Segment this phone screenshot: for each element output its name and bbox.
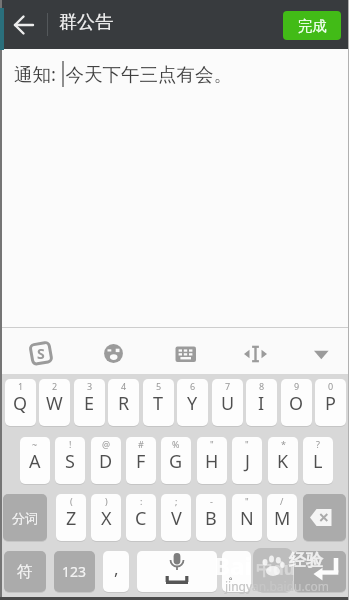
staticText: @ — [102, 438, 111, 450]
staticText: 经验 — [289, 550, 323, 571]
staticText: 8 — [259, 380, 265, 392]
button[interactable]: 7 — [212, 379, 243, 426]
staticText: ! — [69, 438, 72, 450]
button[interactable] — [258, 551, 291, 592]
button[interactable]: 完成 — [283, 11, 341, 40]
staticText: 5 — [156, 380, 162, 392]
button[interactable]: - — [196, 494, 226, 541]
staticText: 群公告 — [59, 11, 113, 34]
button[interactable]: ? — [303, 437, 333, 484]
staticText: , — [114, 557, 119, 580]
button[interactable]: " — [232, 437, 262, 484]
staticText: ; — [175, 495, 178, 507]
button[interactable]: 123 — [54, 551, 95, 592]
staticText: 4 — [121, 380, 127, 392]
staticText: U — [221, 391, 235, 416]
button[interactable] — [10, 14, 38, 36]
button[interactable]: 分词 — [3, 494, 47, 541]
button[interactable]: * — [268, 437, 298, 484]
button[interactable]: ~ — [20, 437, 50, 484]
staticText: J — [245, 449, 250, 474]
button[interactable]: " — [232, 494, 262, 541]
button[interactable] — [175, 346, 197, 363]
staticText: Y — [187, 391, 198, 416]
staticText: P — [325, 391, 336, 416]
staticText: " — [210, 438, 214, 450]
button[interactable]: ( — [56, 494, 86, 541]
button[interactable]: : — [126, 494, 156, 541]
button[interactable]: / — [267, 494, 297, 541]
button[interactable]: 。 — [222, 551, 251, 592]
staticText: V — [171, 506, 182, 531]
staticText: 符 — [17, 562, 33, 582]
staticText: S — [65, 449, 75, 474]
staticText: 123 — [62, 562, 87, 581]
staticText: * — [281, 438, 286, 450]
staticText: 1 — [18, 380, 24, 392]
staticText: H — [205, 449, 219, 474]
staticText: F — [136, 449, 146, 474]
button[interactable] — [294, 551, 346, 592]
button[interactable]: , — [103, 551, 129, 592]
staticText: " — [245, 438, 249, 450]
staticText: L — [313, 449, 323, 474]
staticText: M — [274, 506, 291, 531]
button[interactable]: # — [126, 437, 156, 484]
staticText: " — [245, 495, 249, 507]
button[interactable] — [243, 345, 268, 363]
button[interactable]: 6 — [177, 379, 208, 426]
staticText: B — [205, 506, 217, 531]
staticText: : — [140, 495, 143, 507]
button[interactable]: ; — [161, 494, 191, 541]
button[interactable]: 8 — [246, 379, 277, 426]
staticText: ~ — [32, 438, 38, 450]
staticText: E — [84, 391, 95, 416]
staticText: 完成 — [298, 17, 327, 35]
button[interactable]: 1 — [5, 379, 36, 426]
staticText: S — [37, 344, 45, 363]
staticText: ? — [316, 438, 320, 450]
staticText: T — [153, 391, 164, 416]
staticText: ) — [105, 495, 108, 507]
staticText: / — [280, 495, 284, 507]
button[interactable]: " — [197, 437, 227, 484]
button[interactable]: ! — [55, 437, 85, 484]
button[interactable] — [312, 348, 331, 361]
button[interactable]: 0 — [315, 379, 346, 426]
staticText: jingyan.baidu.com — [225, 578, 329, 594]
staticText: I — [258, 391, 265, 416]
staticText: 。 — [228, 566, 241, 582]
staticText: - — [210, 495, 213, 507]
button[interactable]: @ — [91, 437, 121, 484]
button[interactable]: 4 — [108, 379, 139, 426]
button[interactable]: 3 — [74, 379, 105, 426]
staticText: C — [135, 506, 147, 531]
staticText: 7 — [225, 380, 231, 392]
staticText: 2 — [52, 380, 58, 392]
staticText: O — [289, 391, 304, 416]
staticText: Z — [66, 506, 77, 531]
staticText: X — [101, 506, 112, 531]
staticText: 0 — [328, 380, 334, 392]
button[interactable]: ) — [91, 494, 121, 541]
staticText: N — [240, 506, 254, 531]
button[interactable] — [303, 494, 346, 541]
staticText: 6 — [190, 380, 196, 392]
staticText: Q — [13, 391, 28, 416]
button[interactable]: S — [29, 341, 53, 366]
button[interactable]: 符 — [4, 551, 46, 592]
button[interactable] — [103, 343, 124, 364]
button[interactable]: % — [161, 437, 191, 484]
button[interactable]: 2 — [39, 379, 70, 426]
staticText: K — [277, 449, 289, 474]
button[interactable] — [137, 551, 217, 592]
staticText: 分词 — [12, 510, 38, 526]
button[interactable]: 5 — [143, 379, 174, 426]
staticText: 中du — [256, 557, 295, 580]
staticText: ( — [70, 495, 73, 507]
staticText: 通知: 今天下午三点有会。 — [14, 61, 233, 86]
staticText: # — [138, 438, 144, 450]
button[interactable]: 9 — [281, 379, 312, 426]
staticText: G — [169, 449, 183, 474]
staticText: Bai — [214, 549, 252, 582]
